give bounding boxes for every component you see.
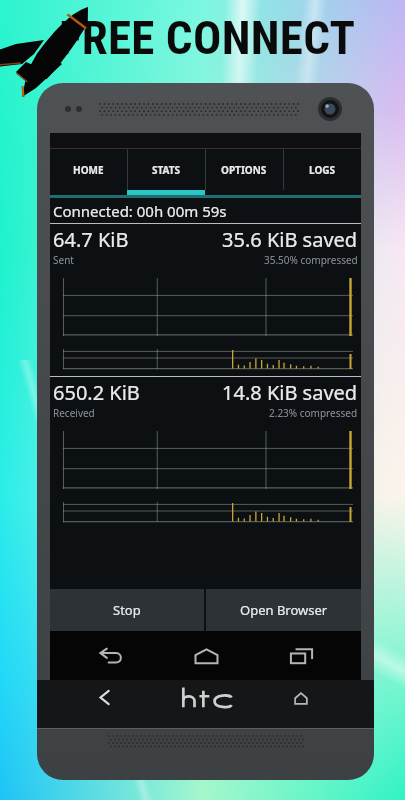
staticText: HOME	[73, 163, 104, 177]
staticText: 64.7 KiB	[53, 226, 129, 253]
button[interactable]: OPTIONS	[205, 149, 283, 190]
staticText: LOGS	[309, 163, 336, 177]
button[interactable]: STATS	[127, 149, 205, 190]
staticText: 2.23% compressed	[269, 406, 358, 420]
button[interactable]: LOGS	[283, 149, 361, 190]
button[interactable]: Back	[75, 634, 145, 678]
staticText: 650.2 KiB	[53, 379, 140, 406]
staticText: FREE CONNECT	[59, 10, 356, 65]
staticText: Received	[53, 406, 95, 420]
staticText: Sent	[53, 253, 74, 267]
staticText: Open Browser	[240, 601, 328, 619]
staticText: 35.50% compressed	[264, 253, 358, 267]
staticText: STATS	[152, 163, 181, 177]
staticText: Connected: 00h 00m 59s	[53, 201, 227, 221]
staticText: 35.6 KiB saved	[222, 226, 358, 253]
button[interactable]: Home	[286, 685, 316, 711]
button[interactable]: Stop	[50, 589, 204, 631]
button[interactable]: Home	[171, 634, 241, 678]
button[interactable]: HOME	[50, 149, 127, 190]
button[interactable]: Open Browser	[206, 589, 361, 631]
staticText: Stop	[113, 601, 141, 619]
button[interactable]: Recent apps	[266, 634, 336, 678]
button[interactable]: Back	[89, 684, 119, 710]
staticText: OPTIONS	[221, 163, 267, 177]
staticText: 14.8 KiB saved	[222, 379, 358, 406]
